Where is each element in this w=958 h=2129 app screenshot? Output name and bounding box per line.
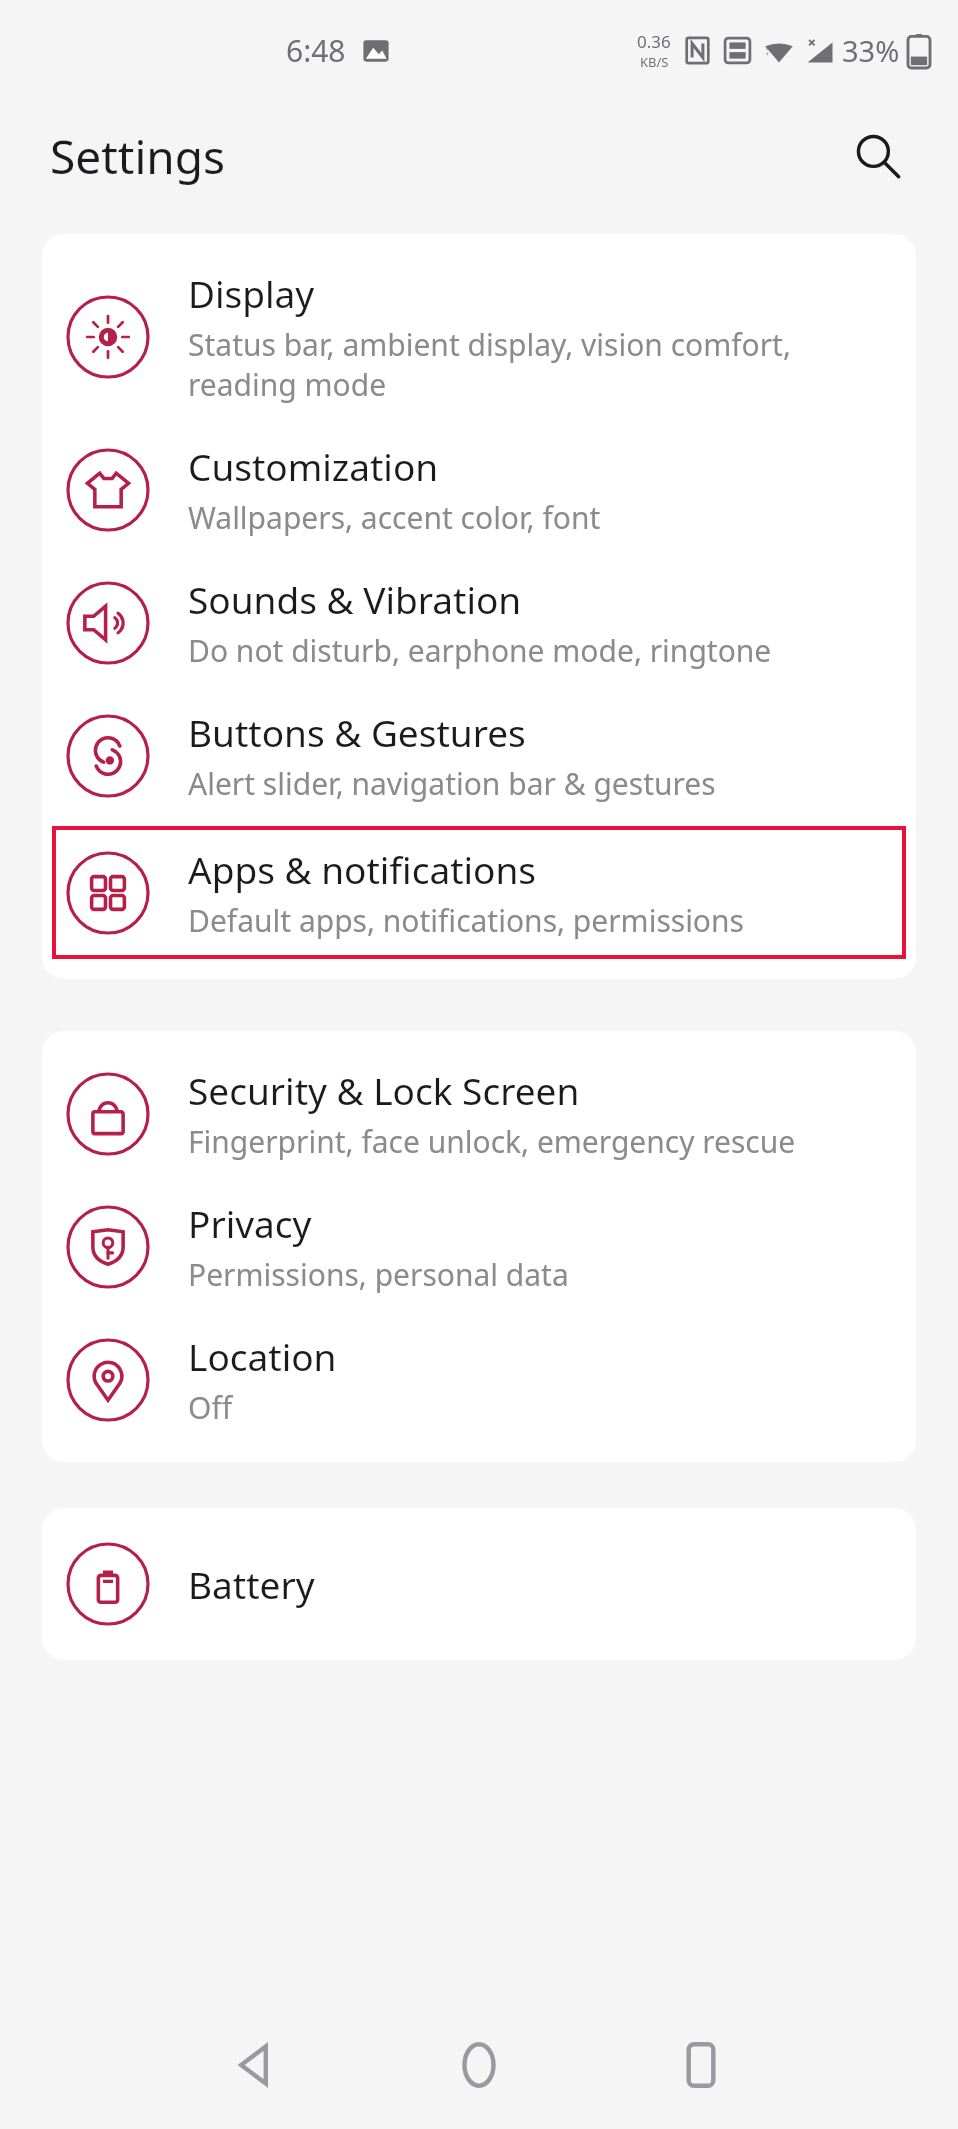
button[interactable]: Back (202, 2010, 312, 2120)
staticText: Security & Lock Screen (188, 1065, 580, 1115)
staticText: Apps & notifications (188, 844, 537, 894)
staticText: Status bar, ambient display, vision comf… (188, 324, 791, 405)
button[interactable]: Recent apps (646, 2010, 756, 2120)
staticText: 0.36 (637, 30, 671, 53)
button[interactable]: Battery (52, 1524, 906, 1644)
staticText: Buttons & Gestures (188, 707, 526, 757)
button[interactable]: Display (52, 250, 906, 423)
staticText: Alert slider, navigation bar & gestures (188, 763, 716, 804)
button[interactable]: Home (424, 2010, 534, 2120)
button[interactable]: Location (52, 1313, 906, 1446)
button[interactable]: Sounds & Vibration (52, 556, 906, 689)
staticText: 6:48 (286, 30, 346, 71)
staticText: Battery (188, 1559, 315, 1609)
button[interactable]: Privacy (52, 1180, 906, 1313)
staticText: Customization (188, 441, 439, 491)
staticText: Settings (50, 125, 226, 188)
button[interactable]: Search (840, 118, 916, 194)
button[interactable]: Security & Lock Screen (52, 1047, 906, 1180)
staticText: KB/S (640, 53, 669, 71)
staticText: Display (188, 268, 315, 318)
button[interactable]: Buttons & Gestures (52, 689, 906, 822)
staticText: Fingerprint, face unlock, emergency resc… (188, 1121, 796, 1162)
staticText: Location (188, 1331, 337, 1381)
staticText: Wallpapers, accent color, font (188, 497, 601, 538)
button[interactable]: Apps & notifications (52, 826, 906, 959)
staticText: Sounds & Vibration (188, 574, 522, 624)
button[interactable]: Customization (52, 423, 906, 556)
staticText: Permissions, personal data (188, 1254, 569, 1295)
staticText: 33% (842, 31, 900, 70)
staticText: Off (188, 1387, 233, 1428)
staticText: Do not disturb, earphone mode, ringtone (188, 630, 772, 671)
staticText: Default apps, notifications, permissions (188, 900, 744, 941)
staticText: Privacy (188, 1198, 312, 1248)
